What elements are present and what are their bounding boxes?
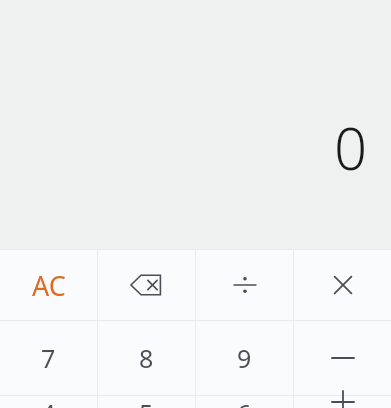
button[interactable] [196,250,293,320]
button[interactable]: 9 [196,321,293,395]
button[interactable] [294,321,391,395]
button[interactable]: AC [0,250,97,320]
staticText: 6 [237,396,252,408]
button[interactable]: Backspace [98,250,195,320]
button[interactable]: 7 [0,321,97,395]
button[interactable]: 6 [196,396,293,408]
staticText: 9 [237,341,252,375]
staticText: 0 [333,108,367,187]
staticText: 8 [139,341,154,375]
button[interactable] [294,396,391,408]
staticText: 7 [41,341,56,375]
staticText: 5 [139,396,154,408]
staticText: 4 [41,396,56,408]
staticText: AC [32,267,66,304]
button[interactable]: 4 [0,396,97,408]
button[interactable]: 5 [98,396,195,408]
button[interactable] [294,250,391,320]
button[interactable]: 8 [98,321,195,395]
